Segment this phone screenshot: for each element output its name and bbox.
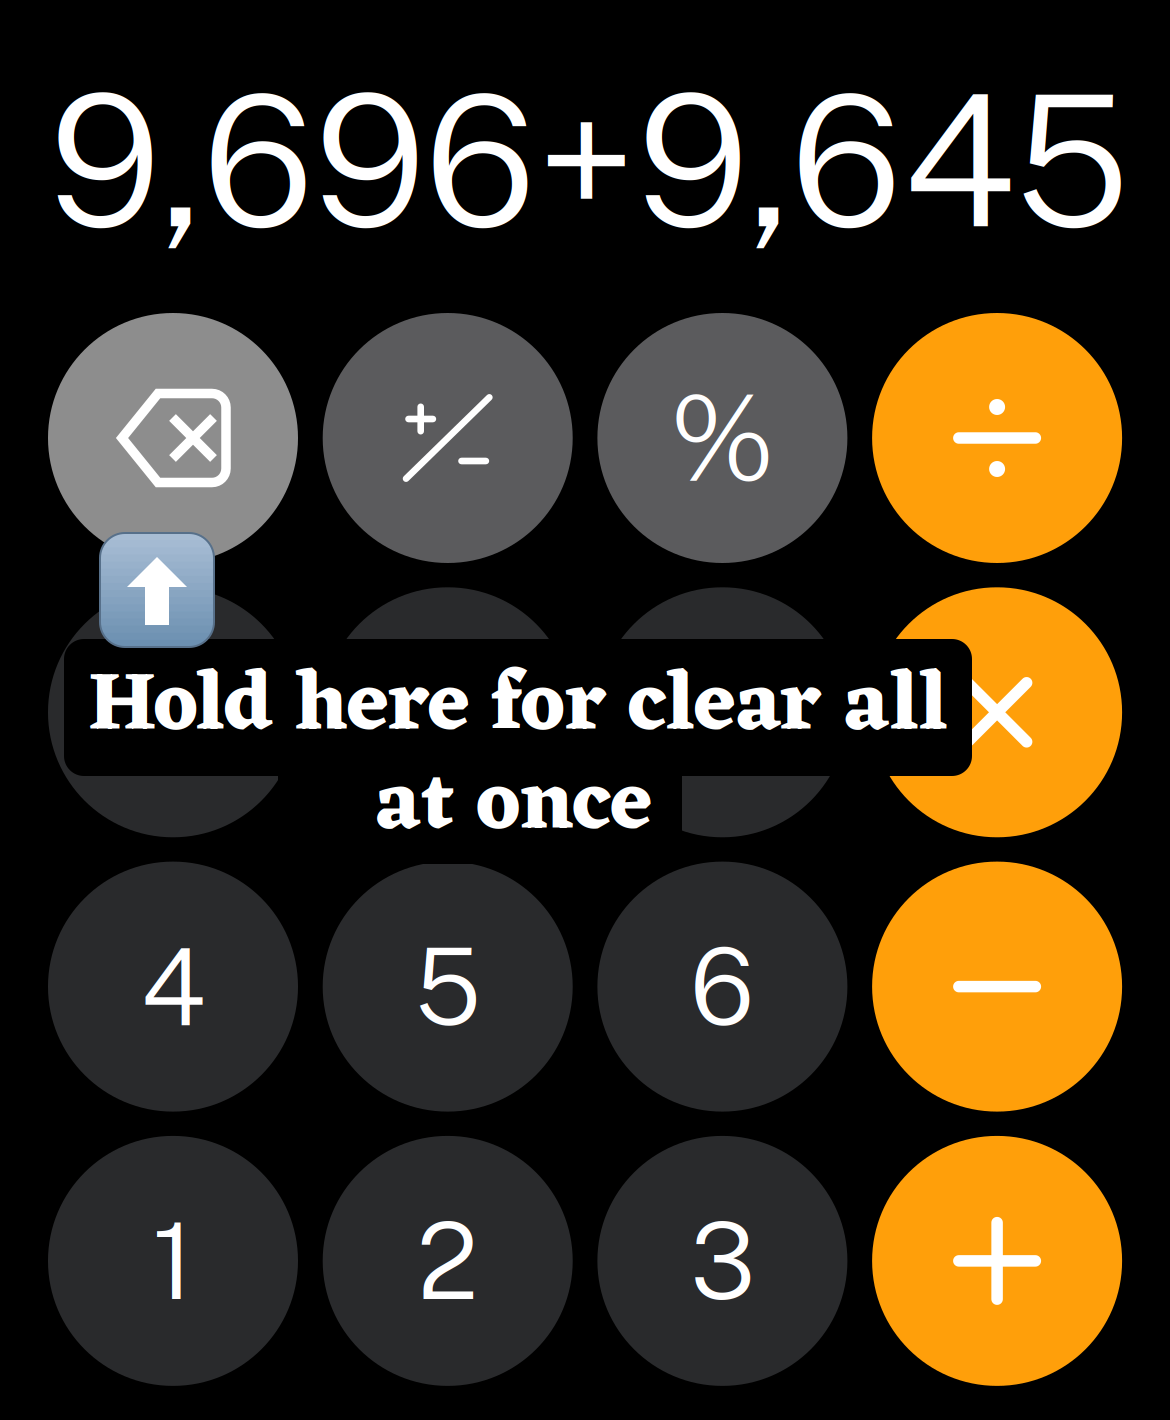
button[interactable]: 9 [597,587,847,837]
button[interactable]: Subtract [872,862,1122,1112]
button[interactable]: Add [872,1136,1122,1386]
staticText: 1 [152,1199,194,1323]
button[interactable]: 7 [48,587,298,837]
button[interactable]: 6 [597,862,847,1112]
staticText: 2 [417,1199,479,1323]
button[interactable]: 8 [323,587,573,837]
staticText: 6 [690,925,755,1048]
button[interactable]: 5 [323,862,573,1112]
staticText: 3 [690,1199,755,1323]
button[interactable]: Divide [872,313,1122,563]
button[interactable]: 2 [323,1136,573,1386]
staticText: 5 [415,925,481,1048]
button[interactable]: Percent [597,313,847,563]
button[interactable]: Multiply [872,587,1122,837]
staticText: Hold here for clear all [88,634,948,781]
staticText: 4 [140,925,205,1048]
staticText: 8 [414,650,482,774]
staticText: 7 [141,650,204,774]
staticText: % [670,369,775,507]
button[interactable]: Plus minus [323,313,573,563]
staticText: 9,696+9,645 [48,53,1129,267]
button[interactable]: Delete [48,313,298,563]
button[interactable]: 4 [48,862,298,1112]
staticText: at once [374,733,651,880]
staticText: 9 [690,650,755,774]
button[interactable]: 1 [48,1136,298,1386]
button[interactable]: 3 [597,1136,847,1386]
